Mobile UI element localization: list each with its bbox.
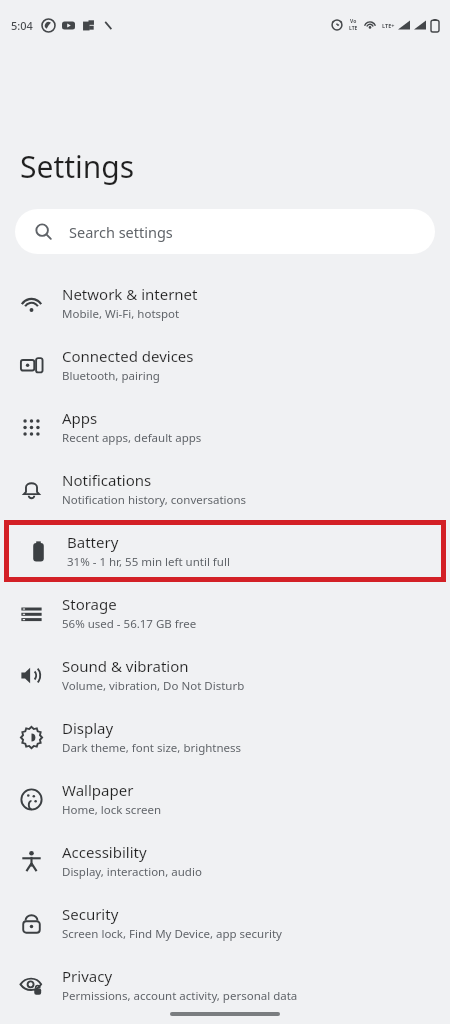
staticText: Notifications [62, 470, 152, 490]
staticText: Accessibility [62, 842, 147, 862]
staticText: Vo [350, 18, 357, 25]
staticText: 31% - 1 hr, 55 min left until full [67, 554, 230, 570]
staticText: 56% used - 56.17 GB free [62, 616, 197, 632]
staticText: Recent apps, default apps [62, 430, 202, 446]
staticText: Network & internet [62, 284, 198, 304]
button[interactable]: Sound & vibration [0, 644, 450, 706]
button[interactable]: Connected devices [0, 334, 450, 396]
staticText: Screen lock, Find My Device, app securit… [62, 926, 282, 942]
staticText: Search settings [69, 222, 173, 242]
staticText: Bluetooth, pairing [62, 368, 160, 384]
button[interactable]: Display [0, 706, 450, 768]
staticText: Storage [62, 594, 117, 614]
button[interactable]: Notifications [0, 458, 450, 520]
staticText: Home, lock screen [62, 802, 161, 818]
staticText: Wallpaper [62, 780, 134, 800]
button[interactable]: Security [0, 892, 450, 954]
staticText: Sound & vibration [62, 656, 189, 676]
staticText: 5:04 [11, 18, 33, 33]
staticText: Settings [20, 146, 135, 187]
button[interactable]: Apps [0, 396, 450, 458]
staticText: Security [62, 904, 119, 924]
staticText: Display, interaction, audio [62, 864, 202, 880]
staticText: Display [62, 718, 114, 738]
staticText: Mobile, Wi-Fi, hotspot [62, 306, 180, 322]
staticText: LTE [349, 25, 358, 32]
button[interactable]: Privacy [0, 954, 450, 1016]
staticText: LTE+ [382, 22, 395, 29]
staticText: Notification history, conversations [62, 492, 247, 508]
staticText: Dark theme, font size, brightness [62, 740, 242, 756]
staticText: Privacy [62, 966, 113, 986]
staticText: Battery [67, 532, 119, 552]
staticText: Permissions, account activity, personal … [62, 988, 298, 1004]
staticText: Apps [62, 408, 98, 428]
button[interactable]: Battery [9, 525, 441, 577]
button[interactable]: Network & internet [0, 272, 450, 334]
button[interactable]: Accessibility [0, 830, 450, 892]
button[interactable]: Search settings [15, 209, 435, 254]
button[interactable]: Storage [0, 582, 450, 644]
staticText: Volume, vibration, Do Not Disturb [62, 678, 245, 694]
button[interactable]: Wallpaper [0, 768, 450, 830]
staticText: Connected devices [62, 346, 194, 366]
